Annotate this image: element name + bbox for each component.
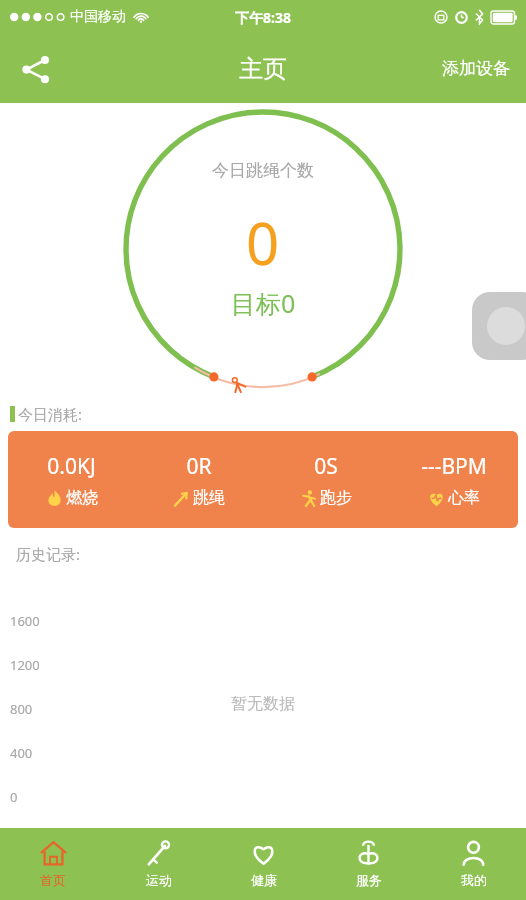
button[interactable]: 健康: [211, 828, 316, 900]
staticText: 跑步: [320, 488, 352, 508]
staticText: 暂无数据: [231, 694, 295, 714]
staticText: 0: [246, 203, 280, 282]
button[interactable]: 0.0KJ: [8, 431, 518, 528]
staticText: 主页: [239, 54, 287, 84]
staticText: 今日消耗:: [18, 404, 83, 424]
staticText: 燃烧: [66, 488, 98, 508]
staticText: 健康: [251, 872, 277, 888]
button[interactable]: 0.0KJ: [8, 431, 135, 528]
staticText: 0: [10, 788, 18, 806]
staticText: 中国移动: [70, 8, 126, 26]
staticText: 800: [10, 700, 33, 718]
staticText: 运动: [146, 872, 172, 888]
staticText: 目标0: [231, 286, 296, 320]
button[interactable]: 添加设备: [426, 46, 526, 91]
staticText: 400: [10, 744, 33, 762]
staticText: 心率: [448, 488, 480, 508]
staticText: 0.0KJ: [47, 452, 96, 481]
staticText: 0R: [186, 452, 212, 481]
staticText: 我的: [461, 872, 487, 888]
staticText: 历史记录:: [16, 544, 81, 564]
staticText: 跳绳: [193, 488, 225, 508]
staticText: 添加设备: [442, 58, 510, 79]
button[interactable]: ---BPM: [390, 431, 518, 528]
staticText: ---BPM: [421, 452, 487, 481]
button[interactable]: 0R: [135, 431, 262, 528]
staticText: 1200: [10, 656, 40, 674]
button[interactable]: 悬浮球: [472, 292, 526, 360]
staticText: 今日跳绳个数: [212, 160, 314, 181]
button[interactable]: 服务: [316, 828, 421, 900]
button[interactable]: 我的: [421, 828, 526, 900]
staticText: 下午8:38: [235, 8, 291, 27]
staticText: 服务: [356, 872, 382, 888]
staticText: 1600: [10, 612, 40, 630]
button[interactable]: 0S: [262, 431, 390, 528]
button[interactable]: 首页: [0, 828, 106, 900]
staticText: 0S: [314, 452, 338, 481]
button[interactable]: 运动: [106, 828, 211, 900]
button[interactable]: 分享: [12, 45, 60, 93]
staticText: 首页: [40, 872, 66, 888]
